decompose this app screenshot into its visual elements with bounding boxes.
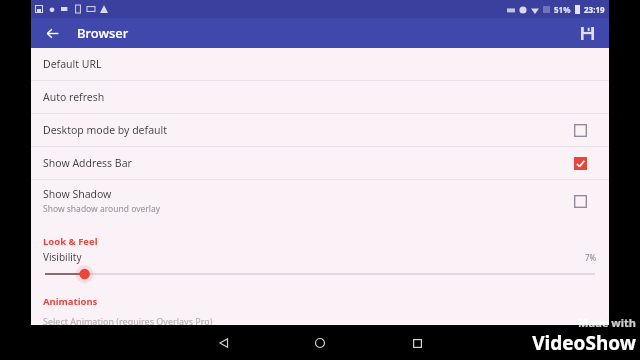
button[interactable]: Recent apps	[405, 331, 429, 355]
staticText: Made with	[578, 315, 636, 330]
staticText: Visibility	[43, 250, 82, 264]
button[interactable]: Auto refresh	[31, 81, 609, 113]
staticText: Animations	[43, 295, 98, 308]
staticText: Default URL	[43, 57, 102, 71]
staticText: 23:19	[584, 4, 605, 15]
staticText: Show shadow around overlay	[43, 203, 161, 215]
button[interactable]: Show Address Bar	[31, 147, 609, 179]
staticText: Look & Feel	[43, 235, 98, 248]
staticText: Select Animation (requires Overlays Pro)	[43, 315, 213, 327]
staticText: Desktop mode by default	[43, 123, 168, 137]
button[interactable]: Save	[575, 21, 599, 45]
button[interactable]: Back	[212, 331, 236, 355]
staticText: Browser	[77, 24, 129, 42]
button[interactable]: Show Shadow	[31, 180, 609, 222]
staticText: 51%	[554, 4, 571, 15]
button[interactable]: Home	[308, 331, 332, 355]
staticText: Show Address Bar	[43, 156, 132, 170]
button[interactable]: Back	[40, 21, 64, 45]
button[interactable]: Select Animation (requires Overlays Pro)	[31, 310, 609, 332]
button[interactable]: Desktop mode by default	[31, 114, 609, 146]
button[interactable]	[31, 264, 609, 284]
staticText: Show Shadow	[43, 187, 112, 201]
staticText: Auto refresh	[43, 90, 105, 104]
staticText: VideoShow	[532, 330, 636, 356]
button[interactable]: Default URL	[31, 48, 609, 80]
staticText: 7%	[585, 252, 597, 263]
